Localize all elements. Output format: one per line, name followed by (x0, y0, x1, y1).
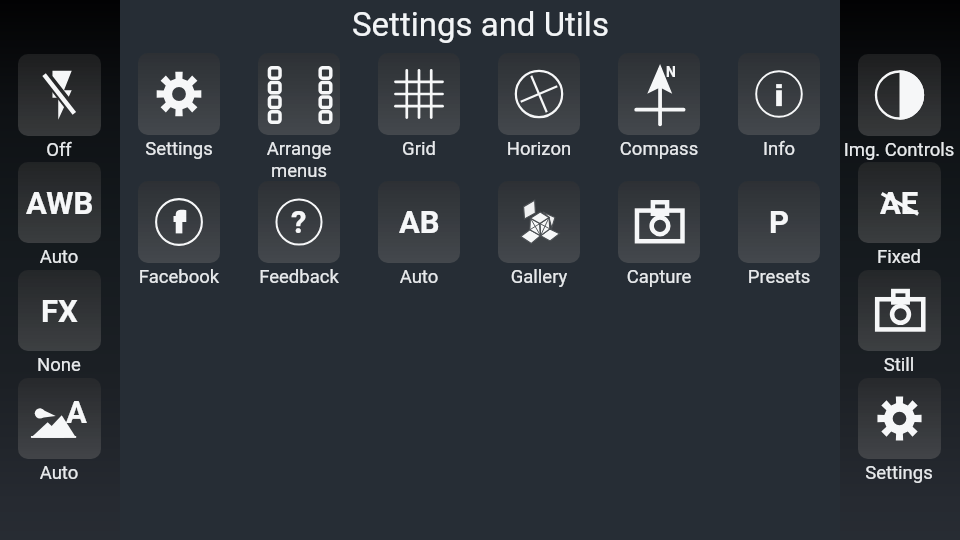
staticText: Settings and Utils (352, 5, 609, 44)
staticText: A (66, 394, 87, 430)
staticText: P (769, 204, 790, 240)
staticText: Facebook (119, 266, 239, 288)
button[interactable]: Facebook (138, 181, 220, 263)
button[interactable]: Fixed (858, 162, 941, 243)
staticText: N (666, 64, 676, 80)
staticText: Settings (847, 462, 951, 484)
staticText: Auto (7, 246, 111, 268)
staticText: AB (399, 204, 440, 240)
staticText: Compass (599, 138, 719, 160)
staticText: Info (719, 138, 839, 160)
button[interactable]: Horizon (498, 53, 580, 135)
staticText: Arrange menus (239, 138, 359, 181)
staticText: Presets (719, 266, 839, 288)
staticText: Auto (7, 462, 111, 484)
button[interactable]: Arrange menus (258, 53, 340, 135)
button[interactable]: Gallery (498, 181, 580, 263)
button[interactable]: Compass (618, 53, 700, 135)
staticText: FX (41, 293, 78, 329)
staticText: Auto (359, 266, 479, 288)
staticText: Feedback (239, 266, 359, 288)
button[interactable]: Info (738, 53, 820, 135)
button[interactable]: None (18, 270, 101, 351)
staticText: Settings (119, 138, 239, 160)
button[interactable]: Auto (18, 378, 101, 459)
staticText: Still (847, 354, 951, 376)
button[interactable]: Img. Controls (858, 54, 941, 136)
button[interactable]: Auto (378, 181, 460, 263)
button[interactable]: Presets (738, 181, 820, 263)
staticText: Off (7, 139, 111, 161)
staticText: Img. Controls (834, 139, 960, 161)
button[interactable]: Grid (378, 53, 460, 135)
button[interactable]: Feedback (258, 181, 340, 263)
button[interactable]: Settings (858, 378, 941, 459)
button[interactable]: Settings (138, 53, 220, 135)
staticText: Horizon (479, 138, 599, 160)
staticText: AE (880, 185, 919, 221)
staticText: Gallery (479, 266, 599, 288)
button[interactable]: Still (858, 270, 941, 351)
staticText: AWB (26, 185, 94, 221)
staticText: Grid (359, 138, 479, 160)
staticText: None (7, 354, 111, 376)
button[interactable]: Auto (18, 162, 101, 243)
button[interactable]: Off (18, 54, 101, 136)
staticText: Capture (599, 266, 719, 288)
staticText: Fixed (847, 246, 951, 268)
staticText: ? (291, 204, 307, 240)
button[interactable]: Capture (618, 181, 700, 263)
